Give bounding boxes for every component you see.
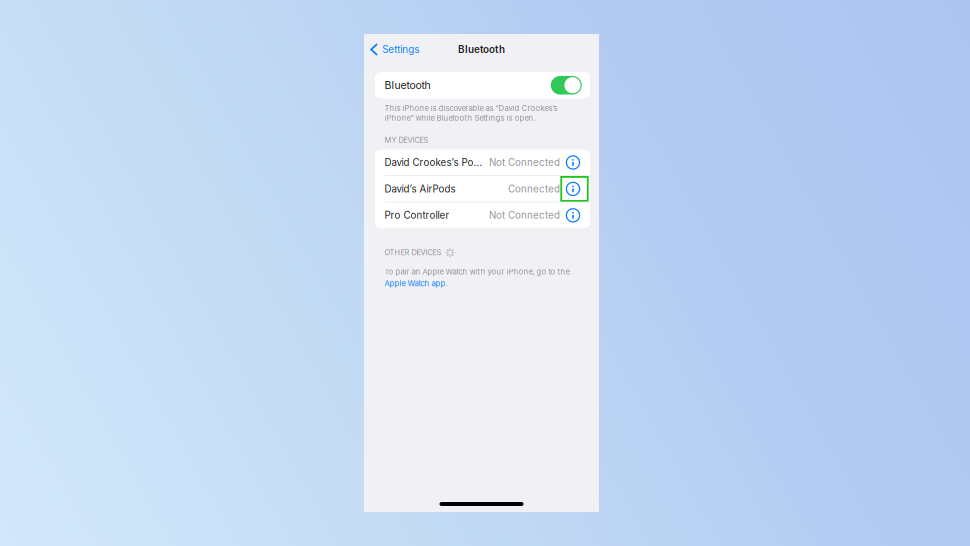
staticText: Apple Watch app <box>384 279 445 288</box>
staticText: Not Connected <box>489 209 560 221</box>
button[interactable]: David Crookes’s Po... <box>375 150 590 175</box>
button[interactable]: Bluetooth <box>551 76 582 95</box>
staticText: Pro Controller <box>384 209 449 221</box>
staticText: David’s AirPods <box>384 183 455 195</box>
button[interactable]: More Info about David’s AirPods <box>560 176 586 201</box>
staticText: To pair an Apple Watch with your iPhone,… <box>384 267 569 276</box>
button[interactable]: David’s AirPods <box>375 176 590 202</box>
staticText: Settings <box>382 43 419 55</box>
button[interactable]: More Info about Pro Controller <box>560 203 586 228</box>
button[interactable]: More Info about David Crookes’s Po... <box>560 150 586 175</box>
button[interactable]: Apple Watch app <box>384 279 445 288</box>
staticText: Bluetooth <box>458 43 505 55</box>
staticText: . <box>445 279 447 288</box>
staticText: MY DEVICES <box>384 136 428 145</box>
staticText: iPhone” while Bluetooth Settings is open… <box>384 113 535 123</box>
staticText: Not Connected <box>489 157 560 168</box>
staticText: This iPhone is discoverable as “David Cr… <box>384 103 557 113</box>
staticText: David Crookes’s Po... <box>384 157 482 168</box>
staticText: Connected <box>508 183 560 195</box>
button[interactable]: Settings <box>364 38 419 61</box>
staticText: Bluetooth <box>384 79 430 92</box>
button[interactable]: Pro Controller <box>375 202 590 228</box>
staticText: OTHER DEVICES <box>384 248 441 257</box>
